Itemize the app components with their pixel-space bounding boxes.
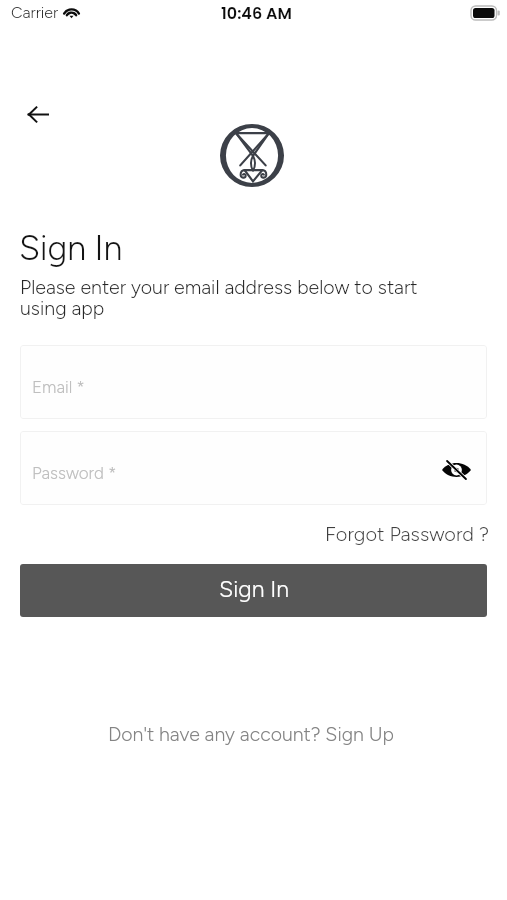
button[interactable]: Email * — [20, 345, 487, 419]
button[interactable]: Forgot Password ? — [0, 522, 489, 546]
staticText: 10:46 AM — [221, 2, 292, 24]
staticText: Sign In — [219, 575, 289, 603]
staticText: Carrier — [11, 3, 59, 22]
staticText: Please enter your email address below to… — [20, 275, 438, 320]
staticText: Password * — [32, 463, 117, 483]
button[interactable]: Back — [19, 96, 56, 133]
button[interactable]: Don't have any account? Sign Up — [104, 722, 397, 745]
button[interactable]: Toggle password visibility — [439, 458, 473, 482]
staticText: Email * — [32, 377, 85, 397]
staticText: Sign In — [19, 228, 123, 269]
button[interactable]: Password * — [20, 431, 487, 505]
staticText: Don't have any account? Sign Up — [108, 722, 394, 745]
button[interactable]: Sign In — [20, 564, 487, 617]
